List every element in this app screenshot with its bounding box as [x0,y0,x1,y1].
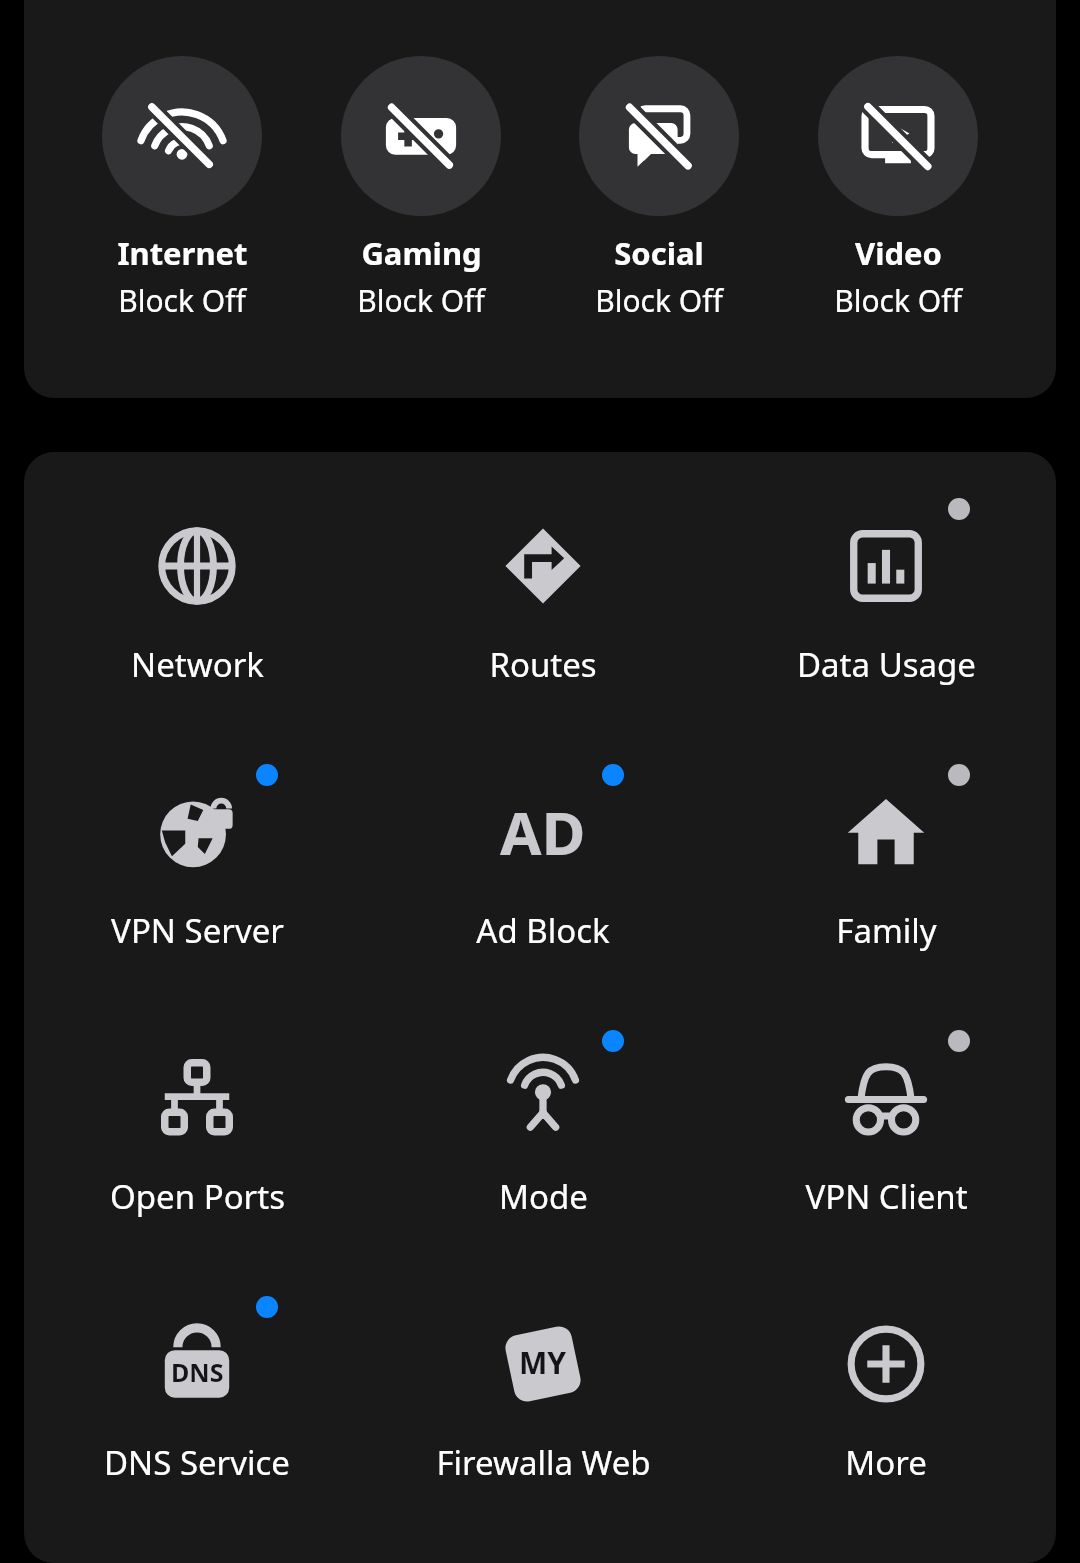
staticText: Video [855,232,942,274]
button[interactable]: Family [716,740,1056,1006]
button[interactable]: Routes [370,474,716,740]
button[interactable]: AD [370,740,716,1006]
staticText: Routes [489,642,597,687]
staticText: Ad Block [476,908,610,953]
staticText: DNS [171,1355,224,1389]
staticText: VPN Client [805,1174,968,1219]
button[interactable]: Mode [370,1006,716,1272]
staticText: MY [519,1342,567,1383]
staticText: Mode [499,1174,588,1219]
staticText: Gaming [361,232,482,274]
staticText: AD [500,791,586,873]
staticText: Block Off [357,280,485,321]
button[interactable]: Video [808,56,988,321]
staticText: Social [614,232,704,274]
button[interactable]: Network [24,474,370,740]
button[interactable]: Gaming [331,56,511,321]
button[interactable]: VPN Server [24,740,370,1006]
staticText: Family [836,908,937,953]
staticText: Network [131,642,264,687]
button[interactable]: Open Ports [24,1006,370,1272]
staticText: Data Usage [797,642,976,687]
button[interactable]: Data Usage [716,474,1056,740]
button[interactable]: Internet [92,56,272,321]
staticText: DNS Service [104,1440,290,1485]
staticText: Block Off [118,280,246,321]
staticText: Block Off [834,280,962,321]
button[interactable]: VPN Client [716,1006,1056,1272]
staticText: Firewalla Web [436,1440,651,1485]
staticText: VPN Server [111,908,284,953]
staticText: Internet [117,232,248,274]
button[interactable]: DNS [24,1272,370,1538]
button[interactable]: More [716,1272,1056,1538]
staticText: Block Off [595,280,723,321]
staticText: More [845,1440,927,1485]
button[interactable]: MY [370,1272,716,1538]
staticText: Open Ports [110,1174,285,1219]
button[interactable]: Social [569,56,749,321]
